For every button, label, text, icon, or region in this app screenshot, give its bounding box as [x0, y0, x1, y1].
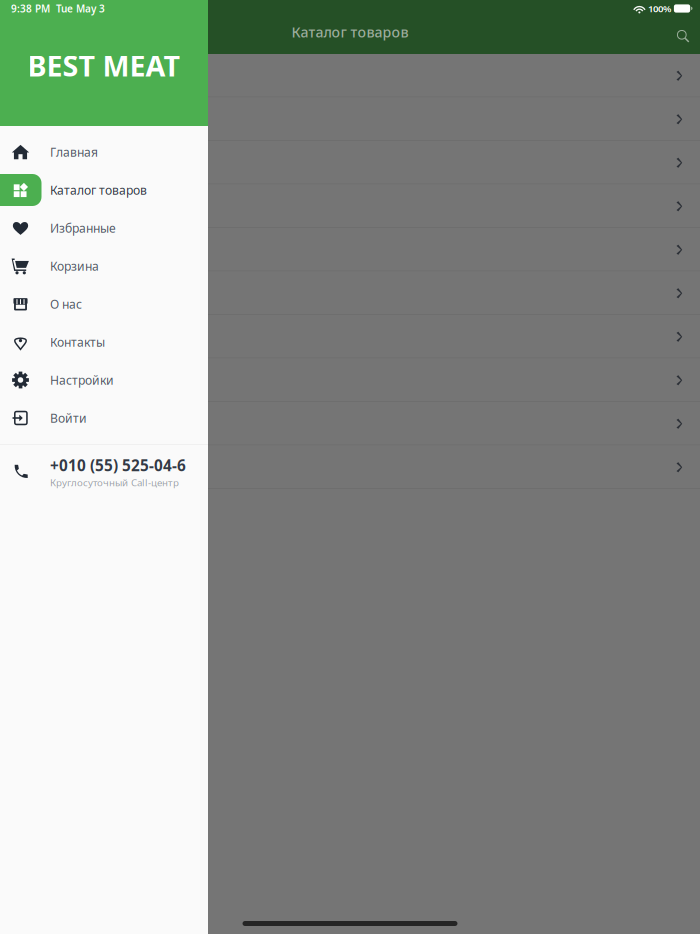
- button[interactable]: Контакты: [0, 323, 208, 361]
- button[interactable]: +010 (55) 525-04-6: [0, 450, 208, 494]
- staticText: Корзина: [50, 258, 99, 274]
- button[interactable]: Корзина: [0, 247, 208, 285]
- staticText: Контакты: [50, 334, 105, 350]
- staticText: Главная: [50, 144, 98, 160]
- staticText: Настройки: [50, 372, 114, 388]
- staticText: 9:38 PM: [11, 2, 50, 15]
- staticText: Каталог товаров: [50, 182, 147, 198]
- button[interactable]: Главная: [0, 133, 208, 171]
- button[interactable]: Настройки: [0, 361, 208, 399]
- staticText: Каталог товаров: [291, 22, 408, 42]
- staticText: Круглосуточный Call-центр: [50, 476, 179, 489]
- staticText: +010 (55) 525-04-6: [50, 455, 186, 476]
- button[interactable]: Избранные: [0, 209, 208, 247]
- staticText: Tue May 3: [56, 2, 105, 15]
- button[interactable]: Search: [668, 21, 698, 51]
- staticText: BEST MEAT: [27, 46, 180, 85]
- button[interactable]: О нас: [0, 285, 208, 323]
- staticText: О нас: [50, 296, 82, 312]
- button[interactable]: Войти: [0, 399, 208, 437]
- button[interactable]: Каталог товаров: [0, 171, 208, 209]
- staticText: Войти: [50, 410, 87, 426]
- staticText: Избранные: [50, 220, 116, 236]
- staticText: 100%: [648, 2, 671, 15]
